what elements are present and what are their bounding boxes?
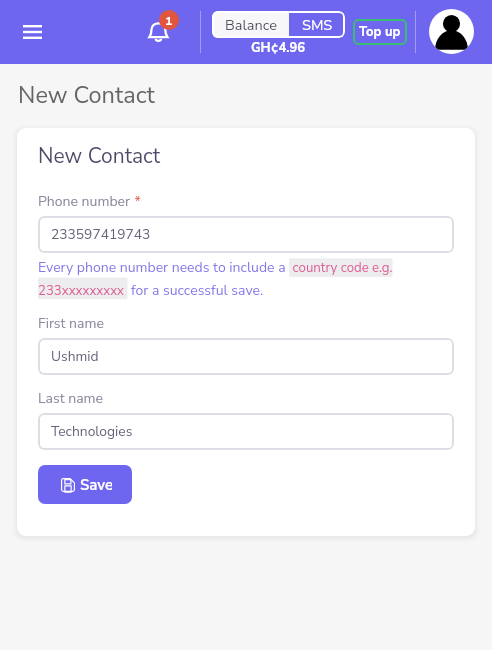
button[interactable]: Balance <box>212 11 289 38</box>
button[interactable]: SMS <box>289 11 345 38</box>
staticText: New Contact <box>38 142 161 171</box>
button[interactable]: Ushmid <box>38 338 454 375</box>
button[interactable]: Menu <box>14 14 50 50</box>
staticText: GH¢4.96 <box>251 39 306 57</box>
staticText: Balance <box>225 15 277 35</box>
staticText: * <box>131 192 141 211</box>
staticText: Top up <box>359 23 401 41</box>
staticText: Phone number <box>38 192 131 211</box>
staticText: 1 <box>165 12 173 29</box>
button[interactable]: Technologies <box>38 413 454 450</box>
staticText: New Contact <box>18 79 155 111</box>
staticText: 233597419743 <box>51 225 151 244</box>
staticText: First name <box>38 314 104 333</box>
button[interactable]: Notifications <box>138 12 178 52</box>
staticText: SMS <box>302 15 333 35</box>
staticText: Save <box>80 475 112 495</box>
staticText: Technologies <box>51 422 133 441</box>
staticText: Last name <box>38 389 103 408</box>
button[interactable]: Top up <box>353 19 407 45</box>
button[interactable]: 233597419743 <box>38 216 454 253</box>
button[interactable]: Save <box>38 465 132 504</box>
button[interactable]: Profile <box>429 9 474 54</box>
staticText: Every phone number needs to include a co… <box>38 258 454 300</box>
staticText: Ushmid <box>51 347 99 366</box>
